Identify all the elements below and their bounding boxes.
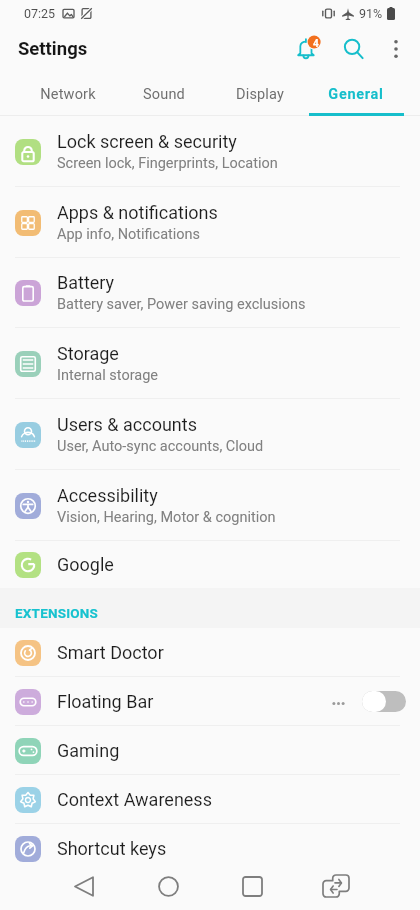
button[interactable]: General: [308, 72, 404, 116]
staticText: App info, Notifications: [57, 226, 201, 243]
staticText: Lock screen & security: [57, 131, 237, 152]
button[interactable]: Lock screen & security: [0, 116, 420, 187]
button[interactable]: Back: [60, 862, 108, 910]
staticText: Google: [57, 554, 114, 575]
button[interactable]: Battery: [0, 258, 420, 328]
button[interactable]: Home: [144, 862, 192, 910]
staticText: Apps & notifications: [57, 202, 218, 223]
staticText: Users & accounts: [57, 414, 197, 435]
staticText: EXTENSIONS: [15, 605, 99, 621]
button[interactable]: Recent apps: [228, 862, 276, 910]
button[interactable]: Search: [331, 26, 377, 72]
button[interactable]: Dual window: [312, 862, 360, 910]
staticText: Smart Doctor: [57, 642, 164, 663]
staticText: 91%: [359, 6, 383, 21]
button[interactable]: Accessibility: [0, 470, 420, 541]
button[interactable]: Notifications, 4 new: [285, 26, 331, 72]
staticText: 07:25: [24, 6, 56, 21]
staticText: Storage: [57, 343, 119, 364]
button[interactable]: Apps & notifications: [0, 187, 420, 258]
staticText: Settings: [18, 38, 88, 60]
staticText: Context Awareness: [57, 789, 212, 810]
button[interactable]: Users & accounts: [0, 399, 420, 470]
button[interactable]: Shortcut keys: [0, 824, 420, 873]
staticText: Battery: [57, 272, 115, 293]
button[interactable]: Floating Bar: [0, 677, 420, 726]
staticText: Display: [236, 86, 284, 103]
button[interactable]: Context Awareness: [0, 775, 420, 824]
staticText: Screen lock, Fingerprints, Location: [57, 155, 278, 172]
staticText: Vision, Hearing, Motor & cognition: [57, 509, 276, 526]
button[interactable]: Google: [0, 541, 420, 588]
staticText: Accessibility: [57, 485, 158, 506]
staticText: Floating Bar: [57, 691, 154, 712]
button[interactable]: Gaming: [0, 726, 420, 775]
staticText: User, Auto-sync accounts, Cloud: [57, 438, 264, 455]
staticText: Battery saver, Power saving exclusions: [57, 296, 306, 313]
button[interactable]: Network: [20, 72, 116, 116]
staticText: Gaming: [57, 740, 120, 761]
staticText: 4: [313, 38, 319, 50]
staticText: Shortcut keys: [57, 838, 167, 859]
staticText: Sound: [143, 86, 185, 103]
button[interactable]: Display: [212, 72, 308, 116]
button[interactable]: Smart Doctor: [0, 628, 420, 677]
staticText: Internal storage: [57, 367, 159, 384]
button[interactable]: Floating Bar toggle, off: [362, 691, 406, 712]
button[interactable]: More options: [377, 26, 415, 72]
staticText: Network: [40, 86, 96, 103]
staticText: General: [328, 86, 384, 103]
button[interactable]: Sound: [116, 72, 212, 116]
button[interactable]: Storage: [0, 328, 420, 399]
